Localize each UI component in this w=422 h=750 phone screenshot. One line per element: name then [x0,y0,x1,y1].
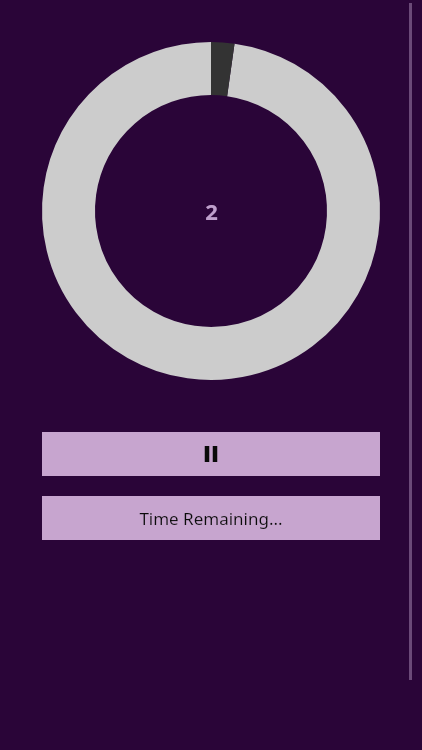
button[interactable]: Pause [42,432,380,476]
staticText: 2 [205,196,218,226]
staticText: Time Remaining... [139,507,283,530]
button[interactable]: Time Remaining... [42,496,380,540]
